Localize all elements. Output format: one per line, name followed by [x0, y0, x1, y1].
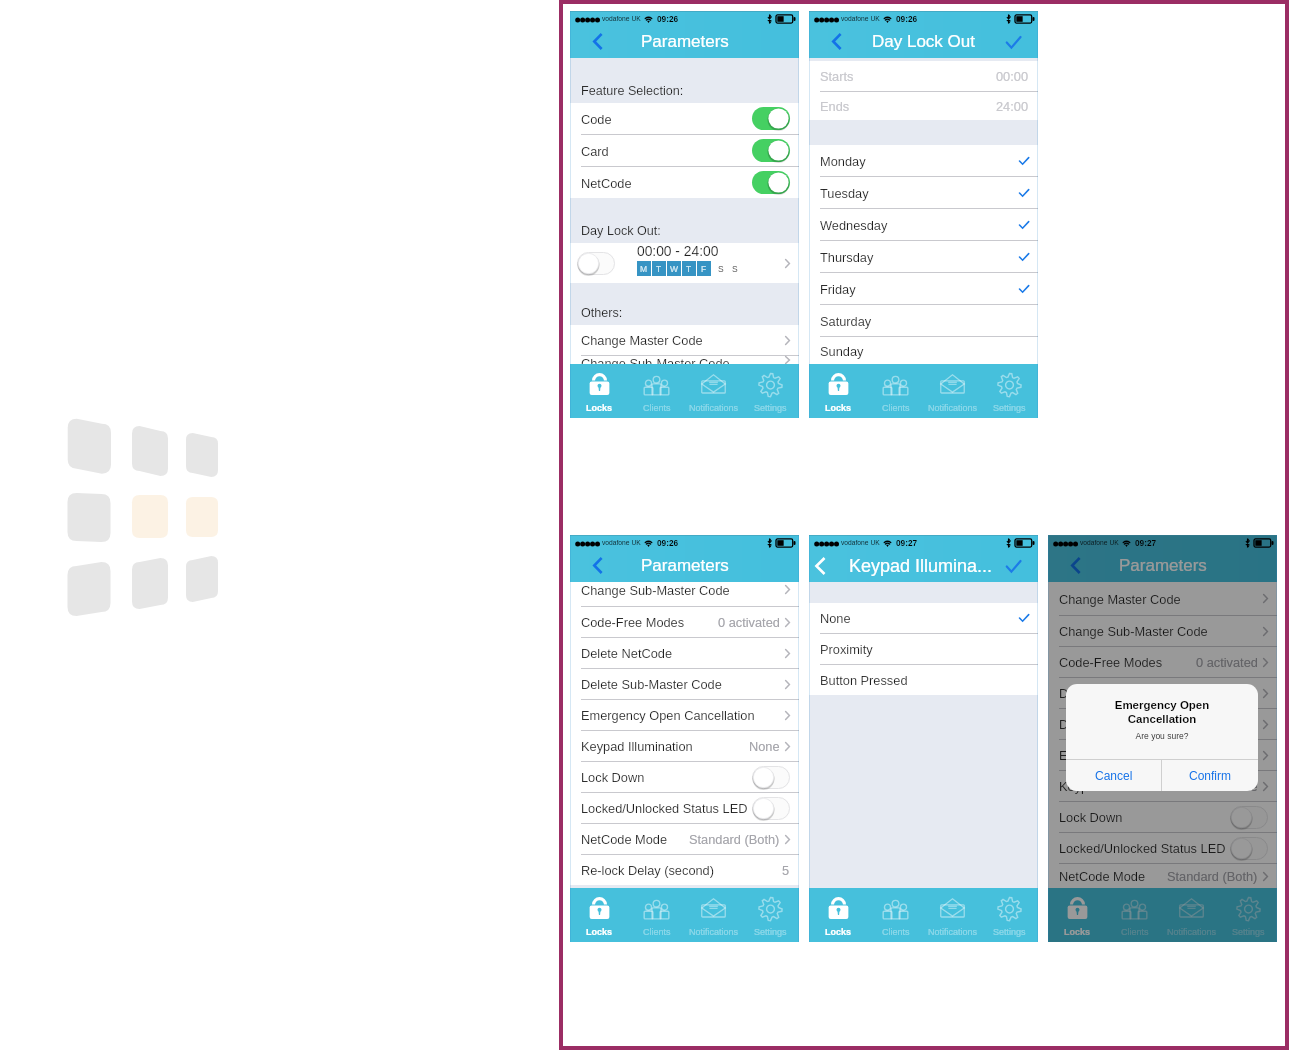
- button[interactable]: Locks: [570, 364, 628, 418]
- button[interactable]: Clients: [628, 364, 685, 418]
- staticText: Clients: [643, 927, 671, 937]
- button[interactable]: [752, 797, 790, 820]
- button[interactable]: Lock Down: [570, 762, 799, 792]
- button[interactable]: Clients: [628, 888, 685, 942]
- staticText: S: [718, 264, 724, 273]
- button[interactable]: Button Pressed: [809, 665, 1038, 695]
- button[interactable]: Back: [806, 552, 833, 579]
- button[interactable]: Monday: [809, 145, 1038, 176]
- button[interactable]: Thursday: [809, 241, 1038, 272]
- staticText: Delete NetCode: [1059, 686, 1151, 700]
- button[interactable]: Delete Sub-Master Code: [1048, 709, 1277, 739]
- button[interactable]: Back: [584, 552, 611, 579]
- button[interactable]: NetCode Mode: [570, 824, 799, 854]
- staticText: Friday: [820, 282, 856, 296]
- button[interactable]: 00:00 - 24:00: [570, 243, 799, 283]
- button[interactable]: Confirm: [1000, 553, 1026, 579]
- staticText: Parameters: [641, 556, 729, 575]
- button[interactable]: Saturday: [809, 305, 1038, 336]
- button[interactable]: [752, 139, 790, 162]
- button[interactable]: [752, 107, 790, 130]
- staticText: Cancel: [1095, 769, 1133, 782]
- button[interactable]: Delete NetCode: [1048, 678, 1277, 708]
- staticText: Emergency Open Cancellation: [1066, 699, 1258, 726]
- button[interactable]: Back: [823, 28, 850, 55]
- button[interactable]: Change Sub-Master Code: [570, 356, 799, 364]
- button[interactable]: Lock Down: [1048, 802, 1277, 832]
- staticText: 0 activated: [718, 615, 780, 629]
- button[interactable]: Settings: [742, 888, 799, 942]
- button[interactable]: Settings: [742, 364, 799, 418]
- button[interactable]: Keypad Illumination: [1048, 771, 1277, 801]
- button[interactable]: Emergency Open Cancellation: [570, 700, 799, 730]
- button[interactable]: Delete NetCode: [570, 638, 799, 668]
- button[interactable]: Back: [1062, 552, 1089, 579]
- button[interactable]: Locks: [1048, 888, 1106, 942]
- staticText: Locks: [1064, 927, 1091, 937]
- button[interactable]: Change Sub-Master Code: [570, 582, 799, 606]
- button[interactable]: Code-Free Modes: [570, 607, 799, 637]
- button[interactable]: Clients: [1106, 888, 1163, 942]
- button[interactable]: Change Master Code: [570, 325, 799, 355]
- button[interactable]: Card: [570, 135, 799, 166]
- button[interactable]: Notifications: [685, 888, 742, 942]
- button[interactable]: [577, 252, 615, 275]
- staticText: 09:27: [896, 538, 918, 547]
- button[interactable]: NetCode: [570, 167, 799, 198]
- button[interactable]: Starts: [809, 61, 1038, 91]
- button[interactable]: Friday: [809, 273, 1038, 304]
- staticText: W: [670, 264, 679, 273]
- button[interactable]: Notifications: [924, 364, 981, 418]
- button[interactable]: NetCode Mode: [1048, 864, 1277, 888]
- button[interactable]: Confirm: [1000, 29, 1026, 55]
- staticText: Delete Sub-Master Code: [581, 677, 722, 691]
- button[interactable]: Re-lock Delay (second): [570, 855, 799, 885]
- button[interactable]: Notifications: [924, 888, 981, 942]
- button[interactable]: Back: [584, 28, 611, 55]
- staticText: 09:26: [896, 14, 918, 23]
- button[interactable]: [752, 766, 790, 789]
- button[interactable]: Tuesday: [809, 177, 1038, 208]
- button[interactable]: Change Master Code: [1048, 582, 1277, 615]
- staticText: 00:00: [996, 69, 1029, 83]
- button[interactable]: Emergency Open Cancellation: [1048, 740, 1277, 770]
- button[interactable]: None: [809, 603, 1038, 633]
- button[interactable]: Locks: [809, 888, 867, 942]
- button[interactable]: Locks: [570, 888, 628, 942]
- button[interactable]: Keypad Illumination: [570, 731, 799, 761]
- staticText: 00:00 - 24:00: [637, 244, 719, 259]
- staticText: Locked/Unlocked Status LED: [1059, 841, 1226, 855]
- staticText: Change Master Code: [581, 333, 703, 347]
- button[interactable]: Proximity: [809, 634, 1038, 664]
- button[interactable]: Locked/Unlocked Status LED: [1048, 833, 1277, 863]
- button[interactable]: Code: [570, 103, 799, 134]
- button[interactable]: Notifications: [685, 364, 742, 418]
- button[interactable]: Code-Free Modes: [1048, 647, 1277, 677]
- button[interactable]: Cancel: [1066, 760, 1161, 791]
- staticText: M: [640, 264, 648, 273]
- button[interactable]: [1230, 806, 1268, 829]
- button[interactable]: Sunday: [809, 337, 1038, 364]
- button[interactable]: Settings: [981, 888, 1038, 942]
- button[interactable]: Ends: [809, 92, 1038, 120]
- button[interactable]: Confirm: [1162, 760, 1258, 791]
- button[interactable]: Delete Sub-Master Code: [570, 669, 799, 699]
- staticText: NetCode Mode: [1059, 869, 1146, 883]
- button[interactable]: [1230, 837, 1268, 860]
- staticText: Tuesday: [820, 186, 869, 200]
- staticText: Notifications: [689, 927, 739, 937]
- button[interactable]: Settings: [981, 364, 1038, 418]
- button[interactable]: Change Sub-Master Code: [1048, 616, 1277, 646]
- button[interactable]: Notifications: [1163, 888, 1220, 942]
- staticText: Lock Down: [581, 770, 645, 784]
- staticText: Clients: [643, 403, 671, 413]
- button[interactable]: Locked/Unlocked Status LED: [570, 793, 799, 823]
- staticText: Notifications: [689, 403, 739, 413]
- button[interactable]: Wednesday: [809, 209, 1038, 240]
- staticText: Keypad Illumina...: [849, 556, 993, 576]
- button[interactable]: [752, 171, 790, 194]
- button[interactable]: Settings: [1220, 888, 1277, 942]
- button[interactable]: Clients: [867, 364, 924, 418]
- button[interactable]: Clients: [867, 888, 924, 942]
- button[interactable]: Locks: [809, 364, 867, 418]
